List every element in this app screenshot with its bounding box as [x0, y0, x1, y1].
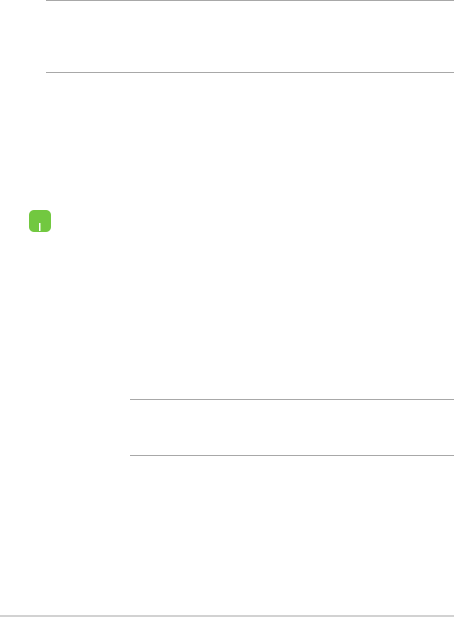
button[interactable]: App — [0, 73, 454, 399]
button[interactable]: Detail — [0, 400, 454, 456]
button[interactable]: Item — [0, 1, 454, 73]
